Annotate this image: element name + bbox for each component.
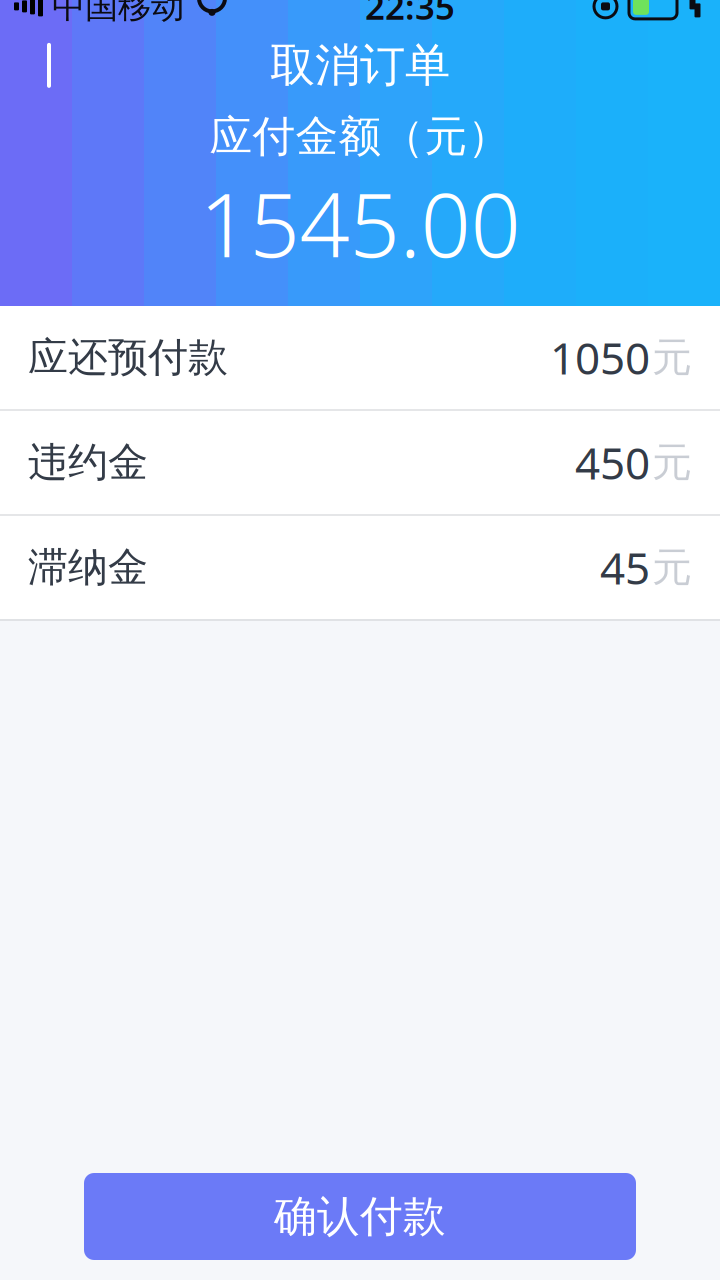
staticText: 45	[600, 538, 650, 597]
staticText: 中国移动	[52, 0, 184, 27]
button[interactable]: 确认付款	[84, 1173, 636, 1260]
staticText: 元	[652, 333, 692, 382]
staticText: 应还预付款	[28, 333, 228, 382]
staticText: 滞纳金	[28, 543, 148, 592]
staticText: 1545.00	[199, 165, 520, 282]
staticText: 22:35	[365, 0, 455, 29]
staticText: 取消订单	[270, 37, 450, 93]
staticText: 元	[652, 543, 692, 592]
staticText: 元	[652, 438, 692, 487]
staticText: 应付金额（元）	[209, 110, 510, 163]
staticText: 1050	[550, 328, 650, 387]
button[interactable]: 返回	[12, 28, 86, 102]
staticText: 450	[575, 433, 650, 492]
staticText: 违约金	[28, 438, 148, 487]
staticText: 确认付款	[274, 1190, 446, 1243]
